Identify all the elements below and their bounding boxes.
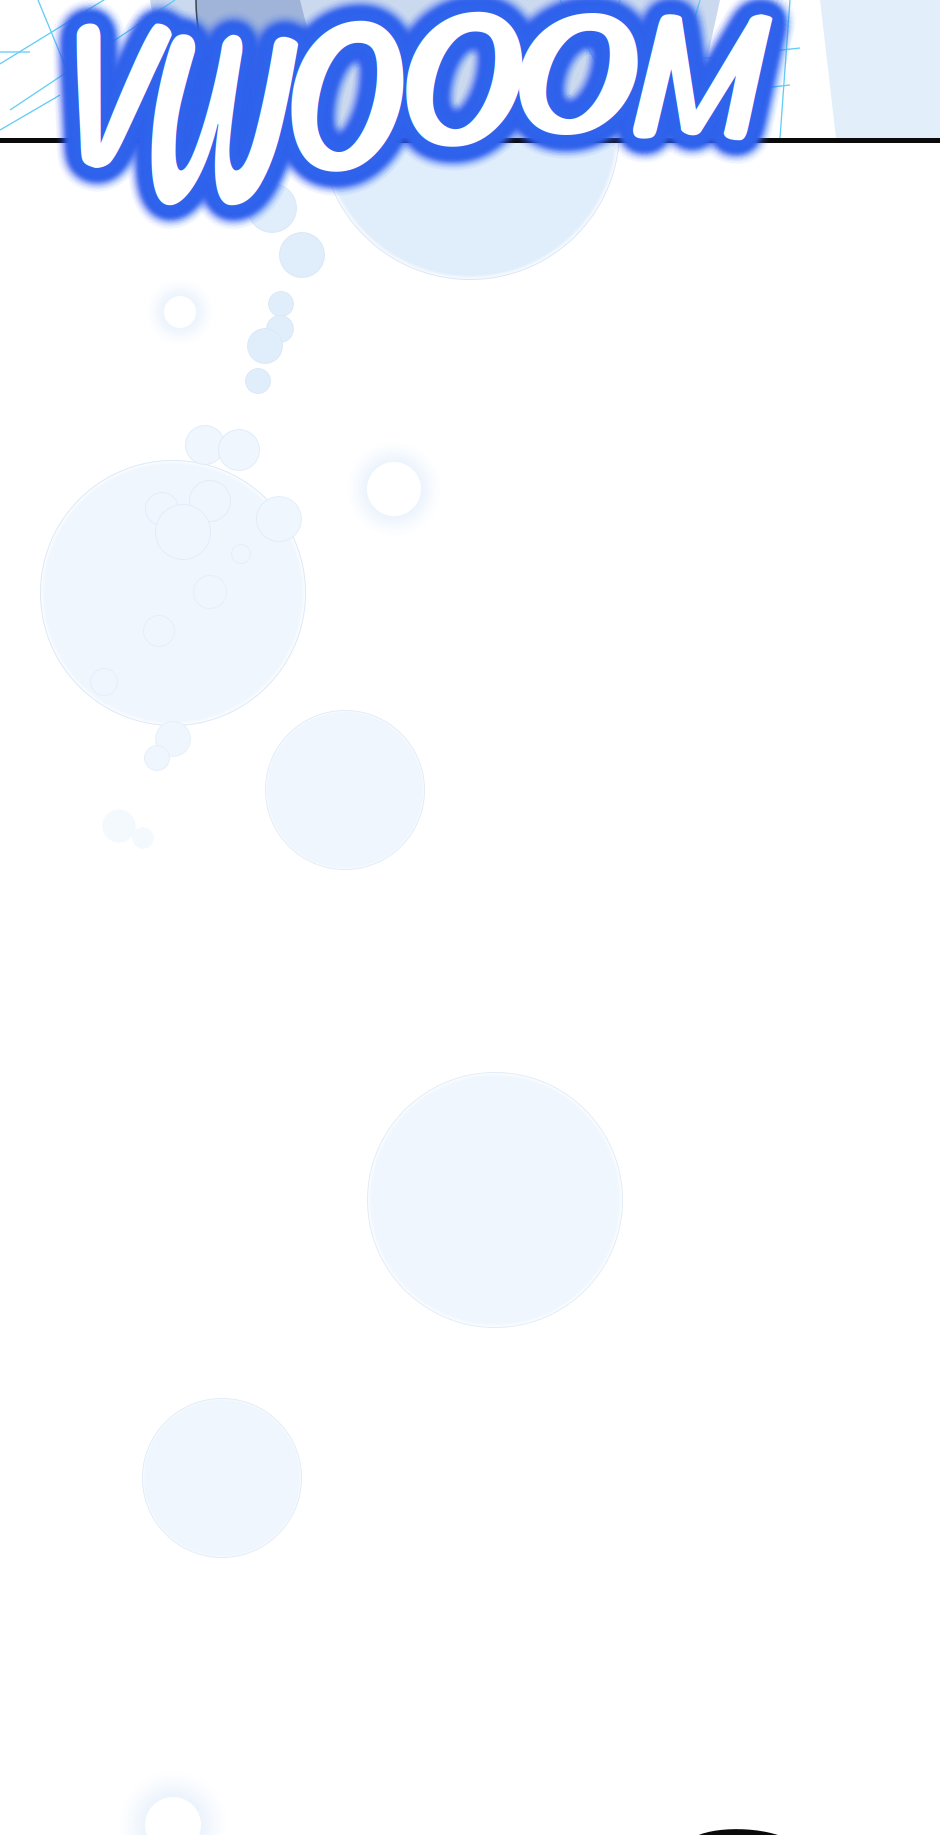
staticText: V	[44, 0, 170, 285]
staticText: O	[273, 0, 414, 287]
staticText: O	[522, 0, 636, 237]
staticText: M	[620, 0, 769, 224]
staticText: O	[277, 0, 418, 286]
staticText: O	[269, 0, 410, 284]
staticText: W	[121, 0, 317, 344]
staticText: M	[638, 0, 787, 234]
staticText: W	[129, 0, 325, 342]
staticText: O	[529, 0, 643, 245]
staticText: O	[516, 0, 630, 229]
staticText: M	[634, 0, 783, 244]
staticText: O	[518, 0, 632, 243]
staticText: M	[630, 0, 779, 243]
staticText: O	[271, 0, 412, 281]
staticText: O	[403, 0, 530, 257]
staticText: O	[280, 0, 421, 284]
staticText: O	[405, 0, 532, 250]
staticText: M	[615, 0, 764, 239]
staticText: M	[611, 0, 760, 254]
staticText: O	[527, 0, 641, 221]
staticText: O	[416, 0, 543, 250]
staticText: O	[284, 0, 425, 282]
staticText: M	[632, 0, 781, 229]
staticText: V	[52, 0, 178, 286]
staticText: O	[524, 0, 638, 227]
staticText: O	[387, 0, 514, 257]
staticText: O	[405, 0, 532, 251]
staticText: O	[413, 0, 540, 243]
staticText: O	[282, 0, 423, 290]
staticText: V	[66, 0, 192, 288]
staticText: M	[627, 0, 776, 242]
staticText: W	[134, 0, 330, 346]
staticText: W	[138, 0, 334, 348]
staticText: O	[292, 0, 433, 280]
staticText: V	[56, 0, 182, 281]
staticText: M	[627, 0, 776, 236]
staticText: W	[115, 0, 311, 343]
staticText: V	[67, 0, 193, 275]
staticText: O	[389, 0, 516, 241]
staticText: W	[117, 0, 313, 347]
staticText: O	[388, 0, 515, 253]
staticText: O	[276, 0, 417, 277]
staticText: W	[136, 0, 332, 329]
staticText: M	[628, 0, 777, 228]
staticText: M	[625, 0, 774, 239]
staticText: O	[518, 0, 632, 220]
staticText: W	[113, 0, 309, 355]
staticText: O	[522, 0, 636, 224]
staticText: O	[518, 0, 632, 233]
staticText: O	[284, 0, 425, 280]
staticText: M	[627, 0, 776, 233]
staticText: M	[624, 0, 773, 238]
staticText: O	[271, 0, 412, 278]
staticText: M	[629, 0, 778, 248]
staticText: V	[52, 0, 178, 284]
staticText: W	[120, 0, 316, 341]
staticText: O	[287, 0, 428, 277]
staticText: O	[407, 0, 534, 242]
staticText: V	[48, 0, 174, 269]
staticText: V	[46, 0, 172, 265]
staticText: V	[58, 0, 184, 271]
staticText: O	[502, 0, 616, 232]
staticText: M	[623, 0, 772, 249]
staticText: W	[108, 0, 304, 340]
staticText: O	[259, 0, 400, 295]
staticText: W	[100, 0, 296, 336]
staticText: O	[399, 0, 526, 253]
staticText: O	[509, 0, 623, 222]
staticText: O	[517, 0, 631, 228]
staticText: O	[521, 0, 635, 228]
staticText: V	[53, 0, 179, 301]
staticText: O	[531, 0, 645, 213]
staticText: O	[538, 0, 652, 234]
staticText: O	[401, 0, 528, 261]
staticText: M	[633, 0, 782, 230]
staticText: W	[100, 0, 296, 345]
staticText: O	[519, 0, 633, 228]
staticText: V	[60, 0, 186, 271]
staticText: O	[408, 0, 535, 268]
staticText: O	[522, 0, 636, 217]
staticText: V	[58, 0, 184, 280]
staticText: O	[531, 0, 645, 242]
staticText: O	[404, 0, 531, 267]
staticText: M	[615, 0, 764, 242]
staticText: M	[624, 0, 773, 237]
staticText: M	[619, 0, 768, 237]
staticText: O	[270, 0, 411, 292]
staticText: O	[418, 0, 545, 244]
staticText: O	[274, 0, 415, 285]
staticText: W	[127, 0, 323, 342]
staticText: O	[531, 0, 645, 222]
staticText: W	[106, 0, 302, 329]
staticText: W	[128, 0, 324, 352]
staticText: M	[631, 0, 780, 225]
staticText: O	[409, 0, 536, 262]
staticText: V	[50, 0, 176, 265]
staticText: W	[109, 0, 305, 346]
staticText: W	[135, 0, 331, 343]
staticText: V	[57, 0, 183, 276]
